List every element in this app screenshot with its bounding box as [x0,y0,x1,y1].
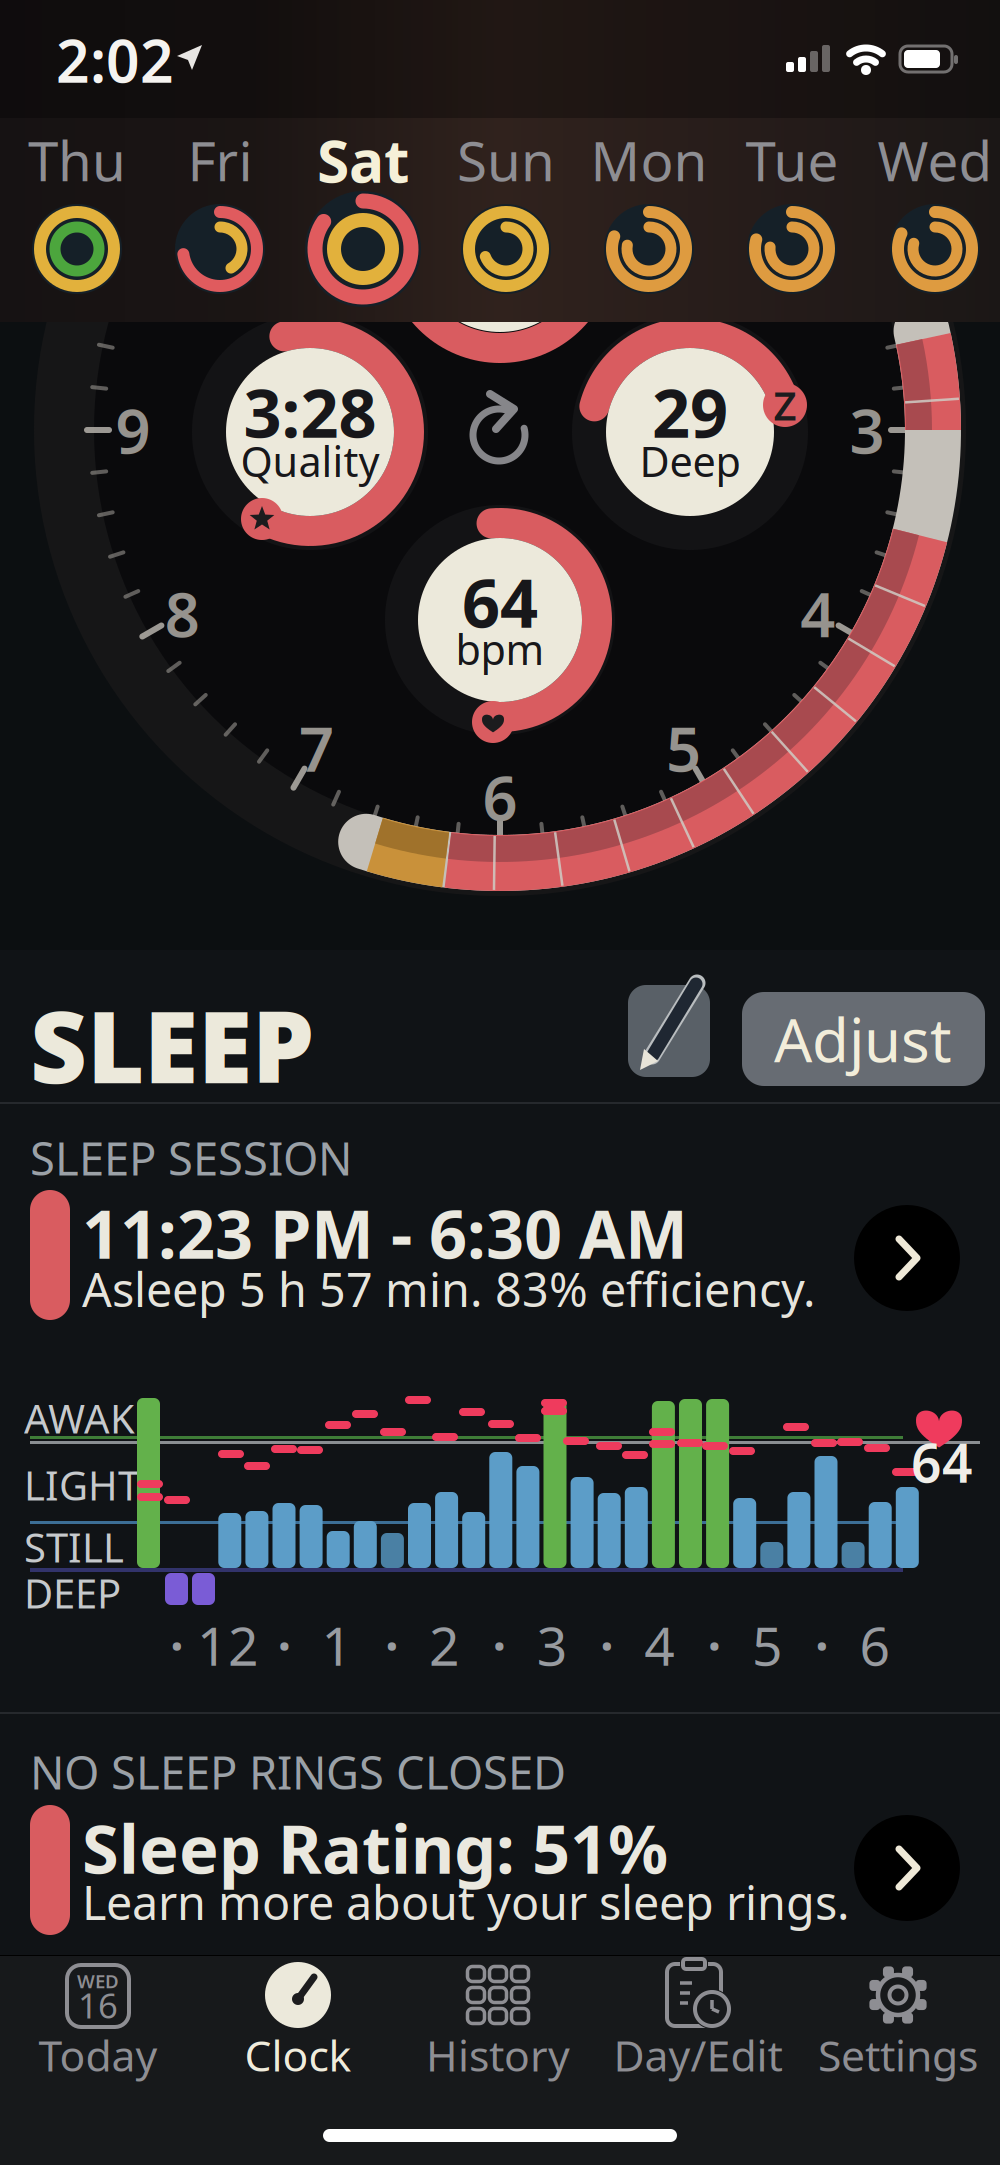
staticText: Tue [745,124,838,196]
button[interactable]: Adjust [742,992,985,1086]
staticText: Asleep 5 h 57 min. 83% efficiency. [82,1258,816,1320]
staticText: Sat [317,121,409,199]
staticText: 6 [482,756,517,838]
staticText: · [277,1610,292,1680]
staticText: 2 [800,206,835,287]
staticText: · [707,1610,722,1680]
staticText: · [492,1610,507,1680]
staticText: 2 [429,1610,460,1680]
staticText: 3 [849,389,884,471]
staticText: 10 [147,206,217,287]
staticText: 6 [859,1610,890,1680]
staticText: 16 [78,1982,118,2028]
button[interactable]: Fri [148,120,291,310]
staticText: Clock [244,2027,351,2083]
staticText: 11 [281,71,351,153]
staticText: 1 [321,1610,352,1680]
staticText: NO SLEEP RINGS CLOSED [30,1742,566,1802]
staticText: SLEEP SESSION [30,1128,352,1188]
staticText: 11:23 PM - 6:30 AM [82,1189,688,1277]
staticText: · [599,1610,614,1680]
staticText: Quality [240,434,379,488]
staticText: Day/Edit [613,2027,782,2083]
staticText: AWAKE [24,1391,157,1444]
button[interactable]: Thu [5,120,148,310]
staticText: 7 [299,707,334,788]
staticText: DEEP [24,1566,121,1619]
staticText: 5 [666,707,701,788]
button[interactable]: Edit [628,975,710,1077]
staticText: 8 [165,573,200,654]
button[interactable]: Mon [577,120,720,310]
staticText: 12 [197,1610,259,1680]
staticText: bpm [455,622,544,676]
button[interactable]: Tue [720,120,863,310]
button[interactable]: Settings [803,1947,993,2077]
staticText: Today [38,2027,157,2083]
staticText: Thu [28,124,126,196]
staticText: Adjust [774,999,952,1079]
staticText: 9 [115,389,150,471]
staticText: 2:02 [56,21,174,99]
button[interactable]: 11:23 PM - 6:30 AM [0,1190,1000,1320]
button[interactable]: History [403,1947,593,2077]
staticText: Settings [818,2027,978,2083]
staticText: Mon [590,124,707,196]
staticText: Fri [187,124,252,196]
staticText: 29 [652,368,728,456]
button[interactable]: Sun [434,120,577,310]
staticText: 64 [462,558,538,646]
staticText: 3:28 [243,368,376,456]
button[interactable]: Sleep Rating: 51% [0,1805,1000,1935]
staticText: Sleep Rating: 51% [82,1804,668,1892]
staticText: Learn more about your sleep rings. [82,1871,850,1933]
staticText: 64 [911,1427,973,1497]
staticText: · [169,1610,184,1680]
staticText: WED [77,1969,119,1993]
staticText: LIGHT [24,1458,140,1511]
staticText: 4 [800,573,835,654]
staticText: History [426,2027,570,2083]
staticText: 4 [644,1610,675,1680]
staticText: · [384,1610,399,1680]
staticText: 1 [666,71,701,153]
staticText: · [814,1610,829,1680]
staticText: Deep [639,434,740,488]
button[interactable]: Wed [863,120,1000,310]
button[interactable]: Day/Edit [603,1947,793,2077]
staticText: 5 [752,1610,783,1680]
staticText: STILL [24,1520,124,1573]
staticText: Sun [457,124,555,196]
staticText: Wed [877,124,992,196]
staticText: Z [773,378,796,431]
button[interactable]: Sat [291,120,434,310]
button[interactable]: WED [3,1947,193,2077]
staticText: 3 [537,1610,568,1680]
staticText: SLEEP [30,979,314,1110]
button[interactable]: Clock [203,1947,393,2077]
